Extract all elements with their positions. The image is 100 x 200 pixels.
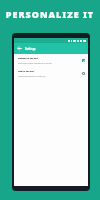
staticText: PERSONALIZE IT	[0, 8, 100, 20]
staticText: Finished to the end	[18, 57, 38, 60]
button[interactable]: Back	[17, 46, 22, 51]
staticText: New to the end	[18, 70, 34, 73]
staticText: Settings	[25, 47, 36, 51]
staticText: Move finished items automatically to the…	[18, 62, 52, 64]
button[interactable]: New to the end	[14, 67, 88, 80]
button[interactable]: Finished to the end	[14, 54, 88, 67]
staticText: Append new elements to the list end	[18, 75, 46, 77]
